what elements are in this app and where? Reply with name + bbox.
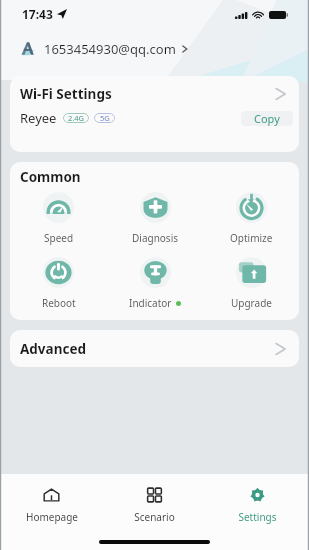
staticText: Reboot xyxy=(42,296,76,310)
staticText: 2.4G xyxy=(68,113,85,123)
staticText: 1653454930@qq.com xyxy=(44,40,176,58)
button[interactable]: Speed xyxy=(10,192,107,245)
button[interactable]: Advanced xyxy=(10,330,299,367)
staticText: 17:43 xyxy=(22,6,53,22)
staticText: Wi-Fi Settings xyxy=(20,85,112,103)
staticText: Advanced xyxy=(20,340,87,358)
button[interactable]: Optimize xyxy=(203,192,299,245)
staticText: Diagnosis xyxy=(132,231,179,245)
staticText: Optimize xyxy=(230,231,273,245)
staticText: Upgrade xyxy=(231,296,272,310)
staticText: Speed xyxy=(44,231,74,245)
staticText: Reyee xyxy=(20,109,57,127)
staticText: Settings xyxy=(238,510,277,524)
button[interactable]: Wi-Fi Settings xyxy=(10,76,299,105)
staticText: Copy xyxy=(254,111,280,126)
staticText: Scenario xyxy=(134,510,175,524)
button[interactable]: Settings xyxy=(206,488,309,537)
button[interactable]: 1653454930@qq.com xyxy=(0,26,309,64)
button[interactable]: Homepage xyxy=(0,488,103,537)
staticText: Indicator xyxy=(129,296,172,310)
staticText: 5G xyxy=(100,113,110,123)
button[interactable]: Indicator xyxy=(107,257,203,310)
button[interactable]: Diagnosis xyxy=(107,192,203,245)
button[interactable]: Copy xyxy=(241,111,293,126)
staticText: Common xyxy=(20,168,81,186)
staticText: Homepage xyxy=(26,510,78,524)
button[interactable]: Reboot xyxy=(10,257,107,310)
button[interactable]: Upgrade xyxy=(203,257,299,310)
button[interactable]: Scenario xyxy=(103,488,206,537)
